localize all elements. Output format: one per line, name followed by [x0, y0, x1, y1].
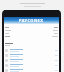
button[interactable] — [5, 68, 58, 72]
button[interactable] — [5, 53, 58, 58]
button[interactable] — [5, 48, 58, 53]
button[interactable] — [5, 63, 58, 68]
button[interactable] — [5, 58, 58, 63]
staticText: PAYCONEX — [19, 18, 44, 23]
